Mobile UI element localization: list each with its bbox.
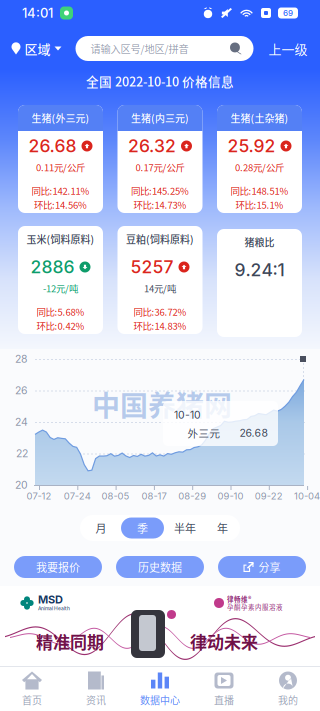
button[interactable]: 直播	[192, 667, 256, 711]
staticText: 全国 2022-10-10 价格信息	[86, 72, 234, 90]
staticText: 精准同期	[36, 629, 104, 654]
staticText: 0.28元/公斤	[235, 160, 284, 174]
staticText: 24	[15, 416, 28, 428]
staticText: 07-24	[64, 490, 91, 502]
staticText: 环比:14.83%	[133, 319, 186, 332]
staticText: 季	[137, 520, 148, 536]
staticText: 07-12	[26, 490, 51, 502]
staticText: 22	[16, 447, 28, 460]
staticText: 分享	[258, 559, 280, 575]
staticText: 26.68	[239, 427, 268, 439]
staticText: 25.92	[227, 135, 275, 157]
staticText: 律动未来	[190, 629, 258, 654]
staticText: 08-05	[102, 490, 130, 502]
staticText: 2886	[30, 256, 74, 278]
staticText: 我的	[278, 693, 298, 707]
staticText: 玉米(饲料原料)	[26, 232, 94, 246]
staticText: 环比:14.73%	[133, 198, 186, 211]
button[interactable]: 首页	[0, 667, 64, 711]
staticText: 直播	[214, 693, 234, 707]
staticText: 同比:36.72%	[133, 305, 186, 318]
staticText: 孕酮孕素内服溶液	[227, 602, 283, 612]
button[interactable]: 豆粕(饲料原料)	[117, 229, 202, 337]
staticText: 上一级	[268, 39, 307, 58]
staticText: 14:01	[22, 5, 53, 21]
staticText: 半年	[174, 520, 196, 536]
staticText: 5257	[130, 256, 173, 278]
staticText: 外三元	[187, 425, 220, 441]
button[interactable]: 玉米(饲料原料)	[18, 229, 103, 337]
staticText: 26.68	[28, 135, 76, 157]
button[interactable]: 生猪(内三元)	[117, 108, 202, 216]
button[interactable]: 季	[121, 517, 164, 538]
staticText: 9.24:1	[234, 259, 284, 281]
staticText: 区域	[24, 39, 50, 58]
staticText: 08-29	[178, 490, 206, 502]
button[interactable]: 广告横幅	[0, 586, 320, 666]
staticText: 环比:15.1%	[235, 198, 283, 211]
staticText: 生猪(内三元)	[131, 111, 189, 125]
staticText: 10-04	[294, 490, 320, 502]
button[interactable]: 生猪(土杂猪)	[217, 108, 302, 216]
button[interactable]: 历史数据	[116, 556, 204, 578]
staticText: 08-17	[141, 490, 166, 502]
staticText: 09-22	[255, 490, 283, 502]
staticText: 同比:5.68%	[36, 305, 84, 318]
staticText: -12元/吨	[43, 281, 78, 295]
staticText: 09-10	[217, 490, 243, 502]
button[interactable]: 年	[206, 517, 239, 538]
staticText: 同比:142.11%	[31, 184, 89, 197]
button[interactable]: 资讯	[64, 667, 128, 711]
staticText: 资讯	[86, 693, 106, 707]
button[interactable]: 数据中心	[128, 667, 192, 711]
staticText: 28	[15, 353, 28, 365]
staticText: Animal Health	[38, 605, 70, 611]
button[interactable]: 我要报价	[14, 556, 102, 578]
staticText: 月	[95, 520, 106, 536]
button[interactable]: 上一级	[268, 36, 307, 61]
staticText: 历史数据	[138, 559, 182, 575]
staticText: 中国养猪网	[92, 384, 232, 424]
staticText: 26	[15, 384, 28, 397]
staticText: 环比:14.56%	[34, 198, 87, 211]
staticText: 豆粕(饲料原料)	[126, 232, 194, 246]
staticText: 69	[283, 8, 293, 18]
staticText: 首页	[22, 693, 42, 707]
staticText: 0.11元/公斤	[36, 160, 85, 174]
button[interactable]: 月	[81, 517, 121, 538]
button[interactable]: 半年	[164, 517, 206, 538]
staticText: 请输入区号/地区/拼音	[90, 41, 188, 56]
staticText: MSD	[38, 593, 63, 606]
staticText: 环比:0.42%	[36, 319, 84, 332]
staticText: 20	[15, 479, 28, 491]
button[interactable]: 请输入区号/地区/拼音	[75, 36, 253, 61]
button[interactable]: 我的	[256, 667, 320, 711]
button[interactable]: 生猪(外三元)	[18, 108, 103, 216]
staticText: 同比:148.51%	[230, 184, 288, 197]
staticText: 我要报价	[36, 559, 80, 575]
staticText: 生猪(土杂猪)	[230, 111, 288, 125]
button[interactable]: 区域	[11, 36, 61, 61]
staticText: 同比:145.25%	[131, 184, 189, 197]
staticText: 猪粮比	[244, 235, 274, 249]
button[interactable]: 猪粮比	[217, 229, 302, 337]
staticText: 10-10	[174, 409, 201, 421]
staticText: 26.32	[128, 135, 176, 157]
staticText: 14元/吨	[144, 281, 176, 295]
staticText: 0.17元/公斤	[135, 160, 184, 174]
staticText: 数据中心	[140, 693, 180, 707]
staticText: 年	[217, 520, 228, 536]
button[interactable]: 分享	[218, 556, 306, 578]
staticText: 律畅维®	[227, 594, 251, 604]
staticText: 生猪(外三元)	[31, 111, 89, 125]
